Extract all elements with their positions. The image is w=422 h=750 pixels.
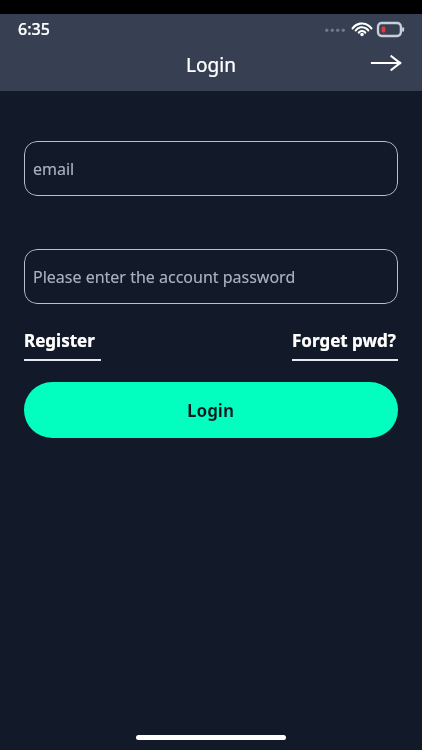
staticText: Please enter the account password xyxy=(33,266,296,288)
button[interactable]: Continue xyxy=(362,39,410,87)
button[interactable]: Login xyxy=(24,382,398,438)
button[interactable]: Register xyxy=(24,329,101,361)
staticText: Forget pwd? xyxy=(292,329,396,352)
staticText: Register xyxy=(24,329,95,352)
button[interactable]: Forget pwd? xyxy=(292,329,398,361)
staticText: email xyxy=(33,158,75,180)
button[interactable]: Please enter the account password xyxy=(24,249,398,304)
staticText: 6:35 xyxy=(18,18,50,40)
button[interactable]: email xyxy=(24,141,398,196)
staticText: Login xyxy=(187,399,235,422)
staticText: Login xyxy=(186,52,236,78)
